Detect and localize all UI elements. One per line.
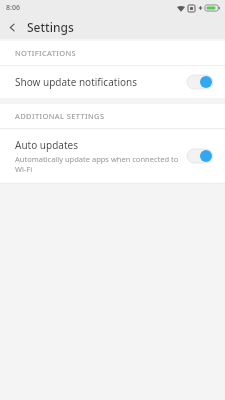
button[interactable]: Back (0, 15, 24, 39)
staticText: ADDITIONAL SETTINGS (15, 111, 105, 121)
staticText: Automatically update apps when connected… (15, 154, 179, 174)
staticText: NOTIFICATIONS (15, 48, 77, 58)
button[interactable]: Show update notifications (0, 66, 225, 98)
staticText: Settings (27, 19, 74, 35)
staticText: 8:06 (6, 3, 20, 13)
button[interactable]: Auto updates (0, 129, 225, 183)
button[interactable]: Toggle (187, 75, 213, 89)
button[interactable]: Toggle (187, 149, 213, 163)
staticText: Auto updates (15, 138, 78, 152)
staticText: Show update notifications (15, 75, 137, 89)
